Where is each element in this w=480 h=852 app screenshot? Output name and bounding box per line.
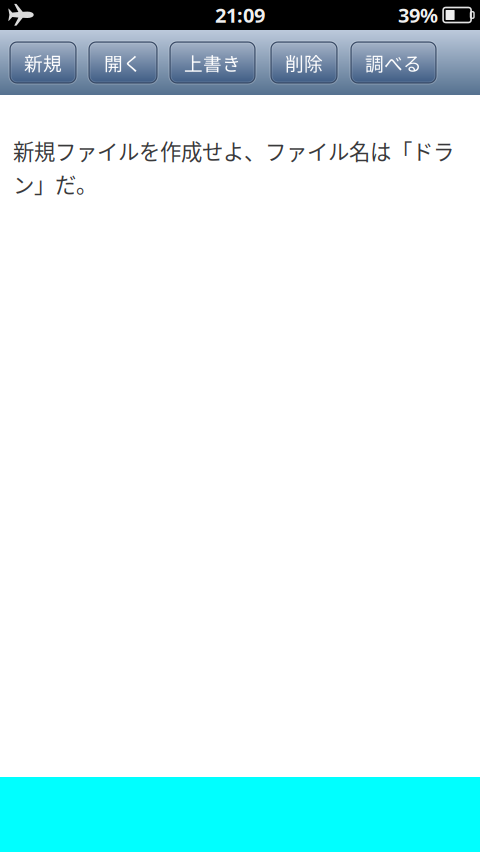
button[interactable]: 削除 [271, 42, 337, 83]
staticText: 39% [398, 2, 438, 28]
button[interactable]: 上書き [170, 42, 255, 83]
staticText: 上書き [184, 49, 241, 76]
button[interactable]: 新規 [10, 42, 76, 83]
button[interactable]: 調べる [351, 42, 436, 83]
staticText: 新規ファイルを作成せよ、ファイル名は「ドラン」だ。 [13, 135, 454, 199]
staticText: 開く [104, 49, 142, 76]
button[interactable]: 開く [89, 42, 157, 83]
staticText: 21:09 [215, 2, 265, 28]
staticText: 削除 [285, 49, 323, 76]
staticText: 調べる [365, 49, 422, 76]
staticText: 新規 [24, 49, 62, 76]
